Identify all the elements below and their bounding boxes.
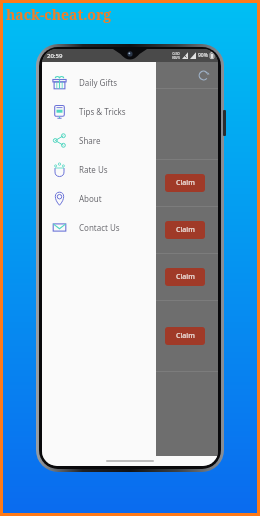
button[interactable]: Daily Gifts — [42, 68, 156, 97]
staticText: 20:59 — [47, 52, 63, 60]
staticText: Daily Gifts — [79, 77, 117, 88]
staticText: Claim — [176, 331, 195, 341]
button[interactable]: Claim — [165, 327, 205, 345]
staticText: Rate Us — [79, 164, 108, 175]
button[interactable]: Rate Us — [42, 155, 156, 184]
button[interactable]: Share — [42, 126, 156, 155]
staticText: Contact Us — [79, 222, 120, 233]
staticText: Claim — [176, 178, 195, 188]
staticText: hack-cheat.org — [6, 5, 112, 24]
staticText: Claim — [176, 272, 195, 282]
staticText: About — [79, 193, 102, 204]
button[interactable]: About — [42, 184, 156, 213]
button[interactable]: Tips & Tricks — [42, 97, 156, 126]
staticText: 0.50 KB/S — [172, 51, 180, 60]
button[interactable]: Claim — [165, 221, 205, 239]
staticText: Tips & Tricks — [79, 106, 126, 117]
button[interactable]: Contact Us — [42, 213, 156, 242]
staticText: Share — [79, 135, 101, 146]
staticText: Claim — [176, 225, 195, 235]
staticText: 90% — [198, 52, 208, 59]
button[interactable]: Claim — [165, 174, 205, 192]
button[interactable]: Claim — [165, 268, 205, 286]
button[interactable]: Refresh — [195, 67, 211, 83]
